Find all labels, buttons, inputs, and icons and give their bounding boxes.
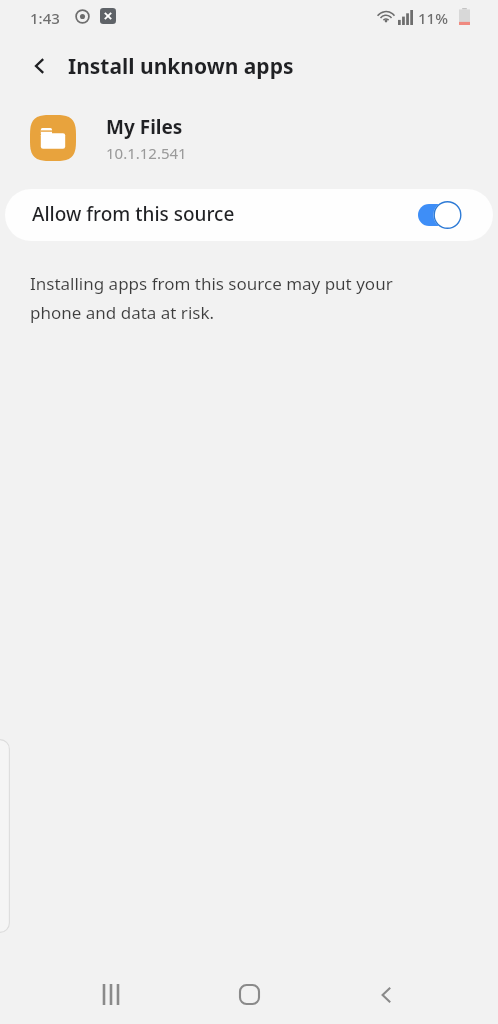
- staticText: My Files: [106, 114, 183, 140]
- staticText: Install unknown apps: [68, 52, 294, 81]
- staticText: Installing apps from this source may put…: [30, 272, 393, 295]
- staticText: 1:43: [30, 8, 60, 28]
- button[interactable]: Home: [219, 965, 279, 1024]
- staticText: Allow from this source: [32, 201, 235, 227]
- staticText: 10.1.12.541: [106, 143, 187, 163]
- button[interactable]: Recent apps: [81, 965, 141, 1024]
- staticText: 11%: [418, 8, 448, 28]
- button[interactable]: Back: [357, 965, 417, 1024]
- button[interactable]: Navigate up: [18, 44, 62, 88]
- staticText: phone and data at risk.: [30, 301, 215, 324]
- button[interactable]: Allow from this source: [5, 189, 493, 241]
